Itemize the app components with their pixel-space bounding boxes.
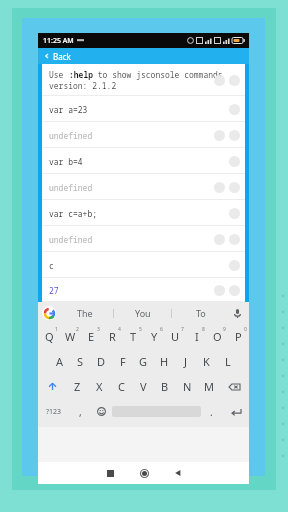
button[interactable]: V — [132, 374, 154, 399]
staticText: c — [49, 260, 54, 271]
button[interactable]: Z — [66, 374, 88, 399]
staticText: 6 — [160, 326, 163, 333]
staticText: Use — [49, 69, 69, 80]
staticText: K — [203, 354, 210, 369]
button[interactable]: To — [172, 302, 229, 324]
staticText: S — [77, 354, 84, 369]
button[interactable]: O — [207, 324, 228, 349]
button[interactable]: Copy line — [214, 234, 225, 245]
staticText: H — [160, 354, 169, 369]
button[interactable]: Copy line — [229, 156, 240, 167]
staticText: to show jsconsole commands — [93, 69, 223, 80]
button[interactable]: I — [186, 324, 207, 349]
button[interactable]: You — [114, 302, 171, 324]
button[interactable]: S — [70, 349, 91, 374]
button[interactable]: C — [110, 374, 132, 399]
staticText: 9 — [223, 326, 226, 333]
staticText: version: 2.1.2 — [49, 80, 117, 91]
button[interactable]: N — [176, 374, 198, 399]
staticText: You — [135, 307, 151, 319]
staticText: O — [213, 329, 222, 344]
button[interactable]: Recents — [93, 462, 127, 484]
staticText: To — [196, 307, 206, 319]
staticText: F — [120, 354, 126, 369]
staticText: var a=23 — [49, 104, 88, 115]
button[interactable]: U — [165, 324, 186, 349]
button[interactable]: ?123 — [38, 399, 70, 424]
staticText: E — [88, 329, 95, 344]
staticText: 8 — [202, 326, 205, 333]
button[interactable]: Copy line — [229, 130, 240, 141]
staticText: A — [56, 354, 64, 369]
button[interactable]: Copy line — [214, 182, 225, 193]
staticText: undefined — [49, 130, 93, 141]
button[interactable]: K — [196, 349, 217, 374]
button[interactable]: , — [70, 399, 91, 424]
button[interactable]: Emoji — [91, 399, 112, 424]
staticText: L — [225, 354, 231, 369]
staticText: W — [65, 329, 76, 344]
staticText: undefined — [49, 182, 93, 193]
staticText: R — [109, 329, 116, 344]
button[interactable]: The — [56, 302, 113, 324]
button[interactable]: D — [91, 349, 112, 374]
staticText: I — [195, 329, 199, 344]
button[interactable]: Back — [38, 48, 249, 64]
staticText: 4 — [118, 326, 121, 333]
button[interactable]: Voice input — [229, 302, 245, 324]
button[interactable]: H — [154, 349, 175, 374]
button[interactable]: Copy line — [229, 208, 240, 219]
staticText: M — [204, 379, 214, 394]
staticText: U — [171, 329, 180, 344]
staticText: . — [210, 405, 213, 419]
staticText: var b=4 — [49, 156, 83, 167]
staticText: P — [235, 329, 242, 344]
staticText: 27 — [49, 285, 59, 296]
button[interactable]: X — [88, 374, 110, 399]
button[interactable]: Enter — [222, 399, 249, 424]
button[interactable]: Home — [127, 462, 161, 484]
button[interactable]: Copy line — [229, 234, 240, 245]
staticText: Q — [45, 329, 54, 344]
button[interactable]: Shift — [38, 374, 66, 399]
staticText: X — [96, 379, 103, 394]
staticText: 3 — [97, 326, 100, 333]
button[interactable]: Y — [144, 324, 165, 349]
staticText: V — [140, 379, 147, 394]
button[interactable]: B — [154, 374, 176, 399]
button[interactable]: Copy line — [229, 182, 240, 193]
button[interactable]: Copy line — [229, 75, 240, 86]
staticText: Back — [53, 51, 71, 62]
button[interactable]: G — [133, 349, 154, 374]
staticText: D — [97, 354, 106, 369]
button[interactable]: Copy line — [214, 130, 225, 141]
button[interactable]: Copy line — [214, 75, 225, 86]
button[interactable]: Back — [161, 462, 195, 484]
button[interactable]: M — [198, 374, 220, 399]
button[interactable]: Q — [38, 324, 60, 349]
button[interactable]: Copy line — [229, 260, 240, 271]
button[interactable]: W — [60, 324, 81, 349]
button[interactable]: Copy line — [229, 104, 240, 115]
button[interactable]: E — [81, 324, 102, 349]
button[interactable]: A — [49, 349, 70, 374]
staticText: T — [130, 329, 137, 344]
staticText: 5 — [139, 326, 142, 333]
button[interactable]: Backspace — [220, 374, 249, 399]
button[interactable]: R — [102, 324, 123, 349]
staticText: 1 — [55, 326, 58, 333]
staticText: var c=a+b; — [49, 208, 97, 219]
button[interactable]: T — [123, 324, 144, 349]
button[interactable]: . — [201, 399, 222, 424]
button[interactable]: Copy line — [214, 285, 225, 296]
staticText: C — [118, 379, 125, 394]
staticText: J — [184, 354, 188, 369]
button[interactable]: L — [217, 349, 238, 374]
button[interactable]: P — [228, 324, 249, 349]
button[interactable]: F — [112, 349, 133, 374]
button[interactable]: Copy line — [229, 285, 240, 296]
button[interactable]: J — [175, 349, 196, 374]
button[interactable]: Google — [42, 306, 56, 320]
staticText: Y — [151, 329, 158, 344]
